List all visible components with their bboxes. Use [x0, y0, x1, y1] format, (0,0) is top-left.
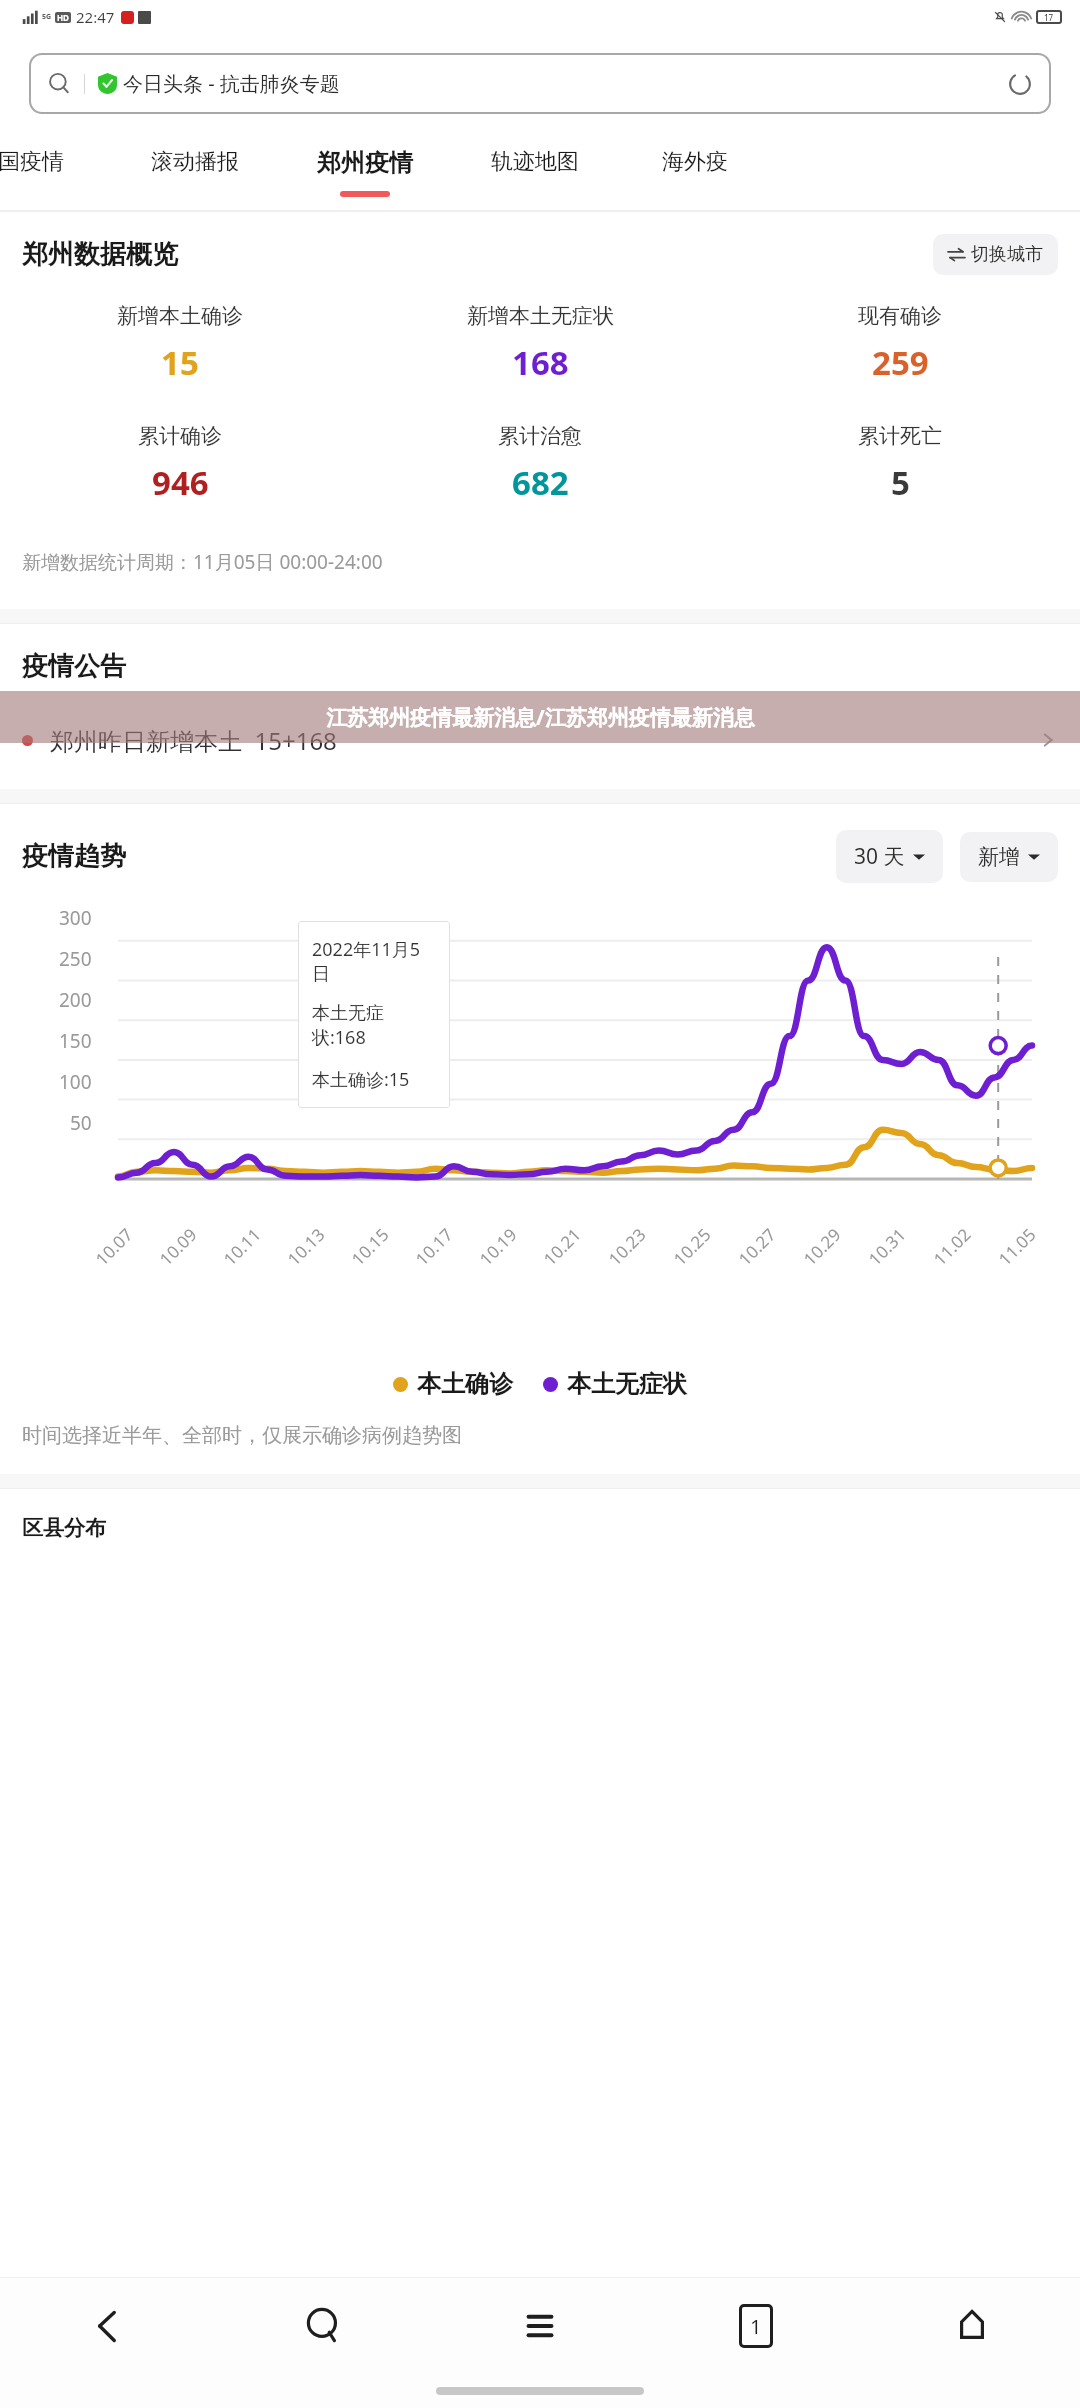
staticText: 今日头条 - 抗击肺炎专题: [123, 70, 340, 97]
staticText: 10.31: [863, 1223, 911, 1270]
staticText: 国疫情: [0, 148, 64, 176]
staticText: 累计治愈: [498, 423, 582, 449]
staticText: 江苏郑州疫情最新消息/江苏郑州疫情最新消息: [326, 703, 755, 732]
staticText: 时间选择近半年、全部时，仅展示确诊病例趋势图: [22, 1423, 462, 1448]
staticText: 100: [59, 1069, 92, 1095]
staticText: 10.19: [474, 1223, 522, 1270]
staticText: 新增数据统计周期：11月05日 00:00-24:00: [22, 549, 383, 575]
staticText: HD: [57, 12, 69, 23]
button[interactable]: Home: [864, 2278, 1080, 2374]
other: Search: [48, 72, 71, 95]
staticText: 10.09: [154, 1223, 202, 1270]
staticText: 50: [70, 1110, 92, 1136]
other: Refresh: [1007, 71, 1033, 97]
staticText: 海外疫: [662, 148, 728, 176]
staticText: 150: [59, 1028, 92, 1054]
button[interactable]: 滚动播报: [110, 130, 280, 210]
staticText: 郑州昨日新增本土 15+168: [50, 724, 337, 757]
staticText: 300: [59, 905, 92, 931]
button[interactable]: 海外疫: [620, 130, 770, 210]
staticText: 疫情趋势: [22, 840, 126, 873]
button[interactable]: 30 天: [836, 830, 943, 883]
staticText: 22:47: [76, 7, 115, 27]
staticText: 累计确诊: [138, 423, 222, 449]
staticText: 17: [1044, 12, 1054, 23]
staticText: 10.13: [282, 1223, 330, 1270]
staticText: 200: [59, 987, 92, 1013]
staticText: 新增: [978, 844, 1020, 870]
staticText: 259: [872, 340, 929, 385]
staticText: 滚动播报: [151, 148, 239, 176]
staticText: 区县分布: [22, 1515, 106, 1541]
staticText: 本土无症状: [567, 1369, 687, 1399]
staticText: 946: [152, 460, 209, 505]
staticText: 新增本土无症状: [467, 303, 614, 329]
button[interactable]: Search: [29, 53, 1051, 114]
staticText: 5G: [42, 12, 52, 22]
other: More: [1038, 730, 1058, 750]
staticText: 30 天: [854, 842, 905, 871]
staticText: 5: [891, 460, 910, 505]
button[interactable]: 新增: [960, 832, 1058, 882]
staticText: 682: [512, 460, 569, 505]
staticText: 10.21: [538, 1223, 586, 1270]
staticText: 10.07: [90, 1223, 138, 1270]
staticText: 11.05: [993, 1223, 1041, 1270]
staticText: 250: [59, 946, 92, 972]
button[interactable]: Back: [0, 2278, 216, 2374]
staticText: 轨迹地图: [491, 148, 579, 176]
staticText: 2022年11月5日: [312, 937, 436, 985]
button[interactable]: 国疫情: [0, 130, 86, 210]
staticText: 168: [512, 340, 569, 385]
staticText: 10.15: [346, 1223, 394, 1270]
staticText: 本土确诊:15: [312, 1067, 410, 1092]
button[interactable]: 切换城市: [933, 234, 1058, 275]
staticText: 现有确诊: [858, 303, 942, 329]
staticText: 切换城市: [971, 243, 1043, 266]
staticText: 11.02: [928, 1223, 976, 1270]
staticText: 本土无症状:168: [312, 1002, 436, 1050]
staticText: 1: [750, 2313, 762, 2340]
button[interactable]: Search: [216, 2278, 432, 2374]
staticText: 累计死亡: [858, 423, 942, 449]
staticText: 新增本土确诊: [117, 303, 243, 329]
button[interactable]: 郑州疫情: [280, 130, 450, 210]
button[interactable]: 轨迹地图: [450, 130, 620, 210]
staticText: 郑州疫情: [317, 148, 413, 178]
staticText: 10.11: [218, 1223, 266, 1270]
staticText: 10.27: [733, 1223, 781, 1270]
button[interactable]: 郑州昨日新增本土 15+168: [0, 705, 1080, 775]
staticText: 10.17: [410, 1223, 458, 1270]
staticText: 10.23: [603, 1223, 651, 1270]
staticText: 郑州数据概览: [22, 238, 178, 271]
staticText: 10.25: [668, 1223, 716, 1270]
staticText: 10.29: [798, 1223, 846, 1270]
button[interactable]: Menu: [432, 2278, 648, 2374]
staticText: 本土确诊: [417, 1369, 513, 1399]
button[interactable]: Tabs: [648, 2278, 864, 2374]
staticText: 15: [161, 340, 199, 385]
staticText: 疫情公告: [22, 650, 126, 683]
